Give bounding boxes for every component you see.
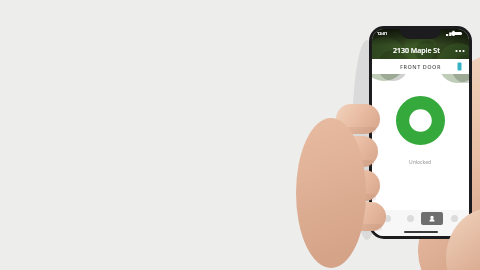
button[interactable]: Lock or unlock front door [396,96,445,145]
button[interactable]: Settings [443,210,465,227]
button[interactable]: Profile [421,210,443,227]
staticText: FRONT DOOR [400,63,441,70]
staticText: Unlocked [409,159,432,166]
button[interactable]: More options [455,46,465,56]
button[interactable]: Devices [399,210,421,227]
button[interactable]: Home [376,210,399,227]
staticText: 2130 Maple St [393,46,440,56]
button[interactable]: Battery status [455,62,464,71]
staticText: 12:01 [377,31,388,36]
